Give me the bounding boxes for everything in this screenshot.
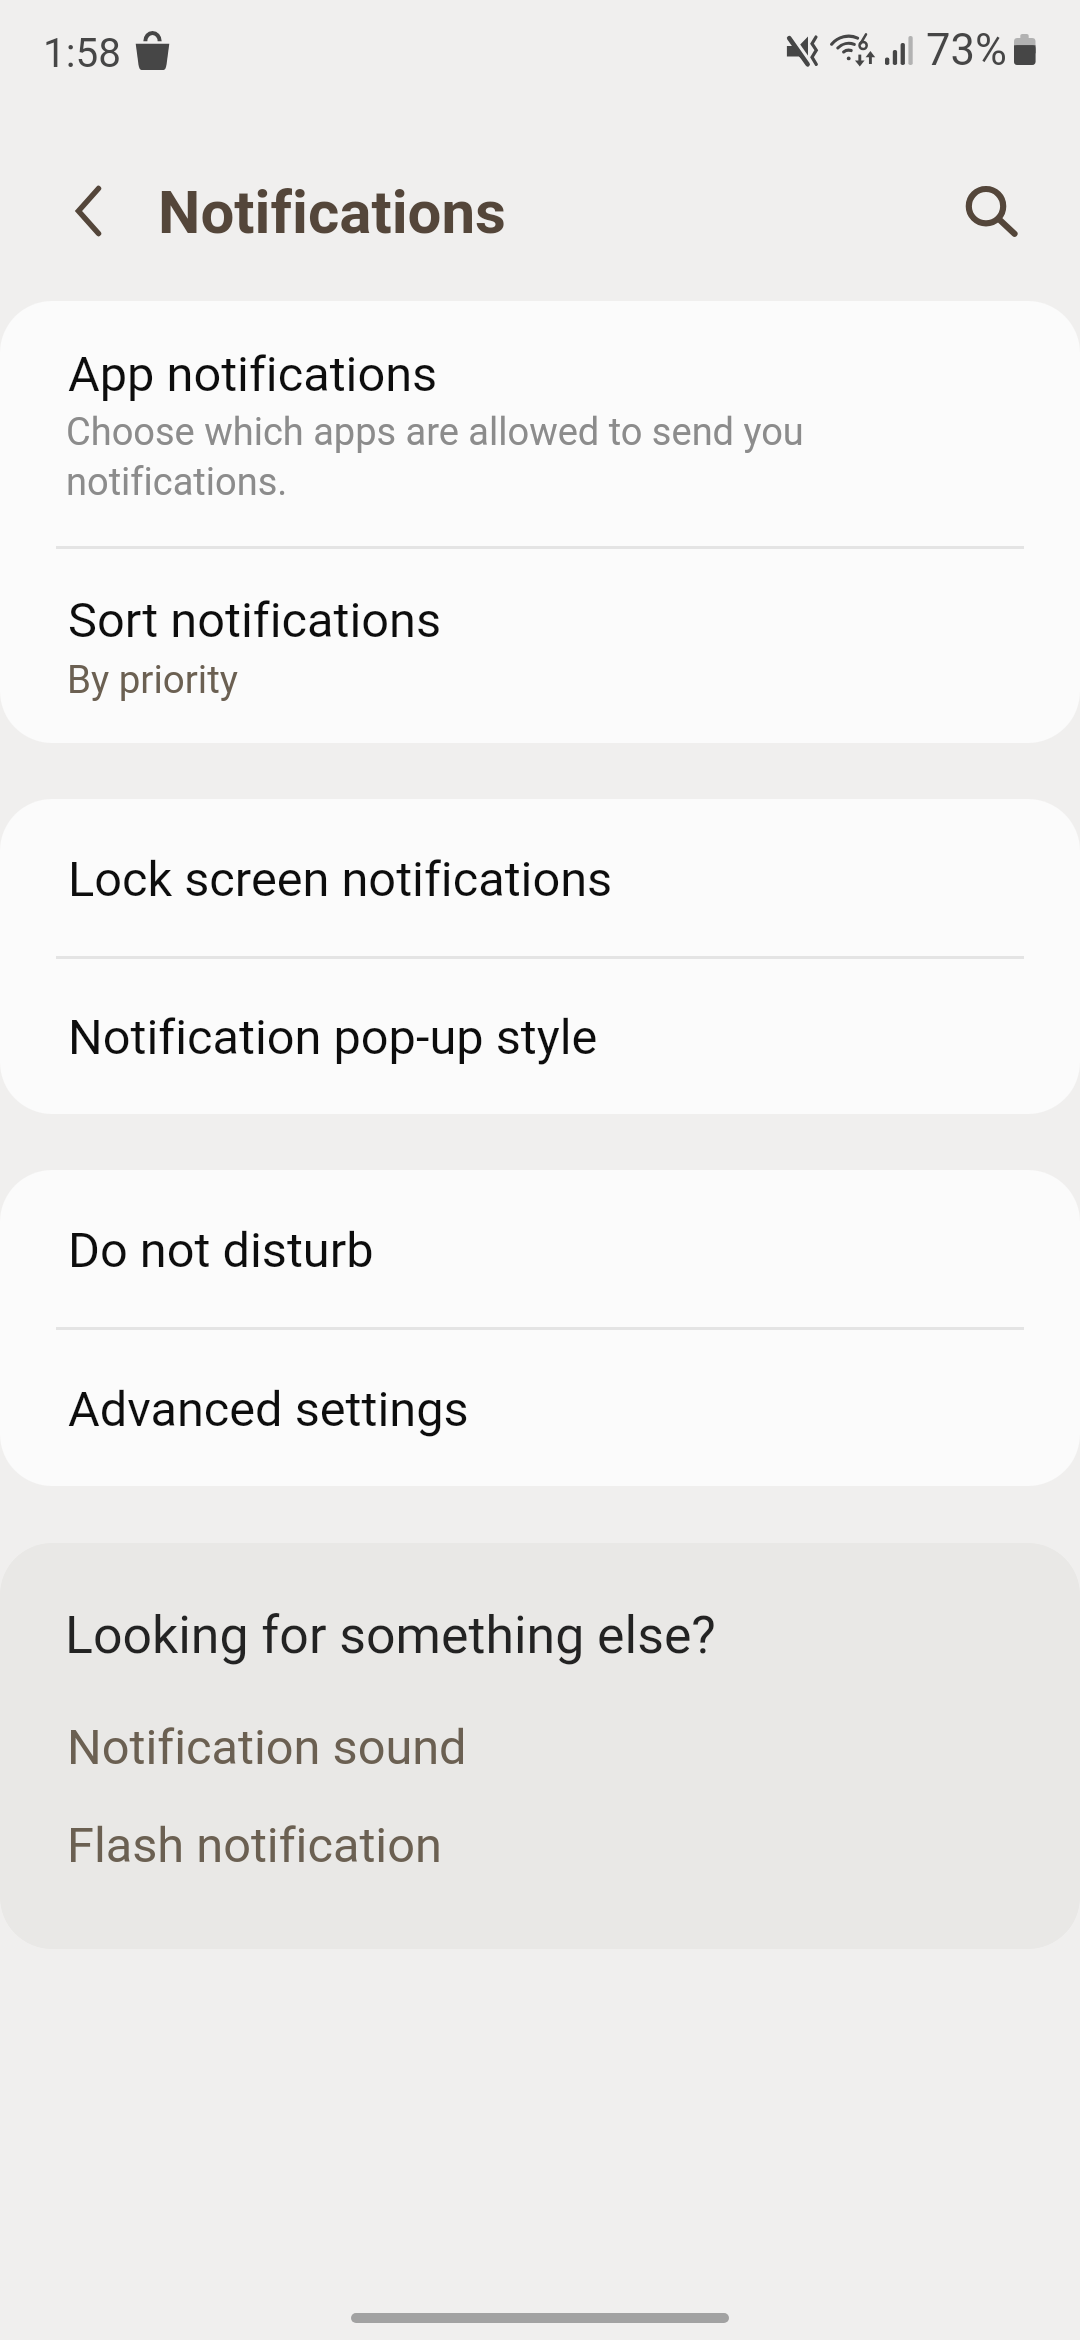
- button[interactable]: Do not disturb: [0, 1170, 1080, 1328]
- staticText: By priority: [67, 657, 238, 702]
- staticText: Notification sound: [67, 1719, 467, 1776]
- staticText: 1:58: [43, 29, 122, 76]
- button[interactable]: Notification pop-up style: [0, 957, 1080, 1114]
- staticText: App notifications: [68, 346, 438, 403]
- staticText: Do not disturb: [68, 1222, 374, 1279]
- staticText: notifications.: [66, 460, 288, 505]
- staticText: Choose which apps are allowed to send yo…: [66, 410, 804, 455]
- staticText: Sort notifications: [68, 592, 442, 649]
- button[interactable]: Notification sound: [0, 1713, 1080, 1785]
- staticText: Advanced settings: [68, 1381, 469, 1438]
- staticText: 73%: [926, 25, 1007, 76]
- staticText: Notifications: [158, 177, 506, 247]
- button[interactable]: Sort notifications: [0, 547, 1080, 743]
- button[interactable]: Navigate up: [52, 174, 124, 246]
- staticText: Flash notification: [67, 1817, 442, 1874]
- button[interactable]: Lock screen notifications: [0, 799, 1080, 957]
- staticText: Looking for something else?: [65, 1605, 716, 1666]
- staticText: Lock screen notifications: [68, 851, 613, 908]
- button[interactable]: App notifications: [0, 301, 1080, 547]
- button[interactable]: Flash notification: [0, 1811, 1080, 1883]
- button[interactable]: Advanced settings: [0, 1328, 1080, 1486]
- staticText: Notification pop-up style: [68, 1009, 598, 1066]
- button[interactable]: Search: [950, 172, 1022, 244]
